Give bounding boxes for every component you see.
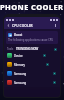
button[interactable]: More options [53, 23, 58, 28]
staticText: TRENDING NOW [16, 47, 39, 51]
button[interactable]: Clean Samsung Internet [52, 71, 57, 76]
staticText: CPU COOLER [12, 24, 33, 28]
staticText: Device [14, 54, 23, 58]
staticText: PHONE COOLER [0, 2, 64, 12]
staticText: The following applications cause CPU hea… [8, 38, 56, 42]
button[interactable]: Samsung Notes [4, 78, 60, 87]
button[interactable]: Device [4, 51, 60, 60]
button[interactable]: Back [6, 23, 11, 28]
button[interactable]: Clean Device [42, 53, 47, 58]
button[interactable]: Clean Memory [45, 62, 50, 67]
staticText: Memory [14, 63, 26, 67]
staticText: Samsung Internet [14, 72, 33, 76]
button[interactable]: Filter [53, 47, 57, 51]
button[interactable]: Clean Samsung Notes [52, 80, 57, 85]
button[interactable]: Boost [6, 31, 58, 44]
button[interactable]: Memory [4, 60, 60, 69]
staticText: Tools [7, 47, 14, 51]
staticText: Samsung Notes [14, 81, 33, 85]
staticText: Boost [14, 33, 23, 37]
button[interactable]: Samsung Internet [4, 69, 60, 78]
